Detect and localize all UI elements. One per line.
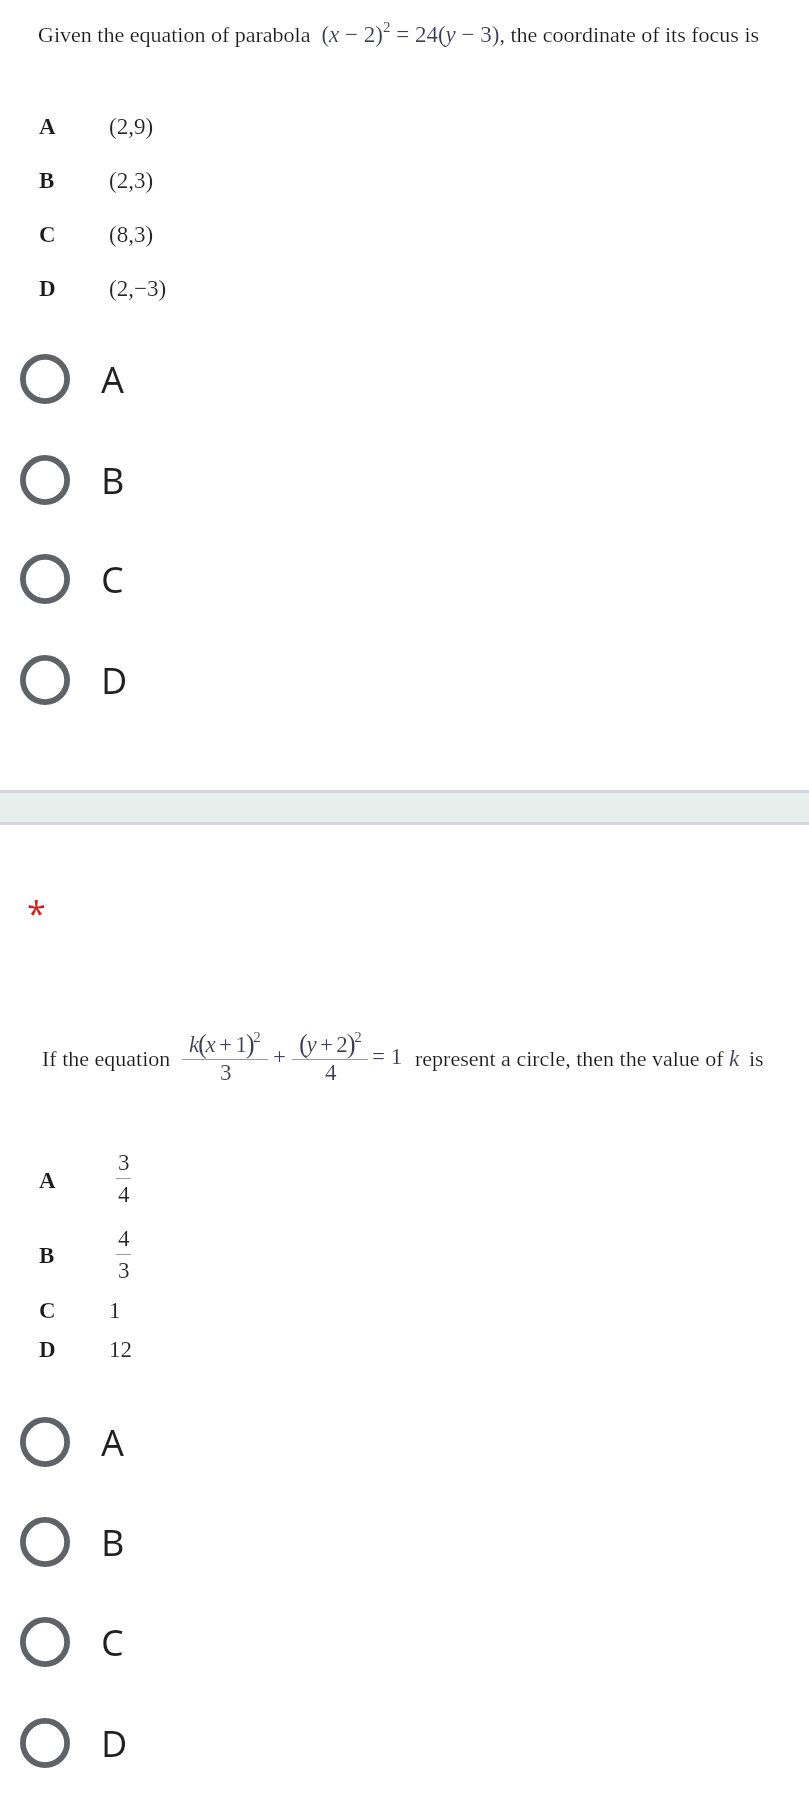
staticText: 12 (109, 1337, 132, 1362)
staticText: * (27, 890, 46, 936)
staticText: C (101, 1618, 124, 1667)
button[interactable]: D (0, 1337, 809, 1377)
staticText: B (101, 1518, 125, 1567)
staticText: B (39, 168, 55, 193)
staticText: C (39, 1298, 56, 1323)
button[interactable]: B (0, 168, 809, 216)
staticText: A (39, 114, 56, 139)
staticText: C (101, 555, 124, 604)
staticText: A (101, 1418, 125, 1467)
staticText: D (101, 1719, 128, 1768)
button[interactable]: C (0, 541, 809, 617)
staticText: B (101, 456, 125, 505)
button[interactable]: B (0, 442, 809, 518)
button[interactable]: D (0, 1705, 809, 1781)
staticText: 4 (325, 1060, 336, 1085)
staticText: (2,9) (109, 114, 154, 139)
staticText: A (101, 355, 125, 404)
button[interactable]: A (0, 1150, 809, 1220)
button[interactable]: D (0, 276, 809, 324)
staticText: k(x + 1)2 (189, 1029, 261, 1059)
staticText: B (39, 1243, 55, 1268)
button[interactable]: D (0, 642, 809, 718)
button[interactable]: A (0, 1404, 809, 1480)
staticText: If the equation (42, 1046, 171, 1070)
staticText: = 1 (372, 1044, 403, 1069)
staticText: A (39, 1168, 56, 1193)
staticText: Given the equation of parabola (x − 2)2 … (38, 19, 760, 47)
staticText: + (273, 1044, 286, 1069)
button[interactable]: C (0, 1298, 809, 1338)
button[interactable]: B (0, 1226, 809, 1296)
staticText: (y + 2)2 (299, 1029, 362, 1059)
staticText: 3 (118, 1150, 129, 1175)
button[interactable]: A (0, 114, 809, 162)
staticText: 4 (118, 1226, 129, 1251)
staticText: (2,−3) (109, 276, 167, 301)
staticText: represent a circle, then the value of k … (415, 1046, 764, 1071)
staticText: (2,3) (109, 168, 154, 193)
button[interactable]: C (0, 1604, 809, 1680)
staticText: 1 (109, 1298, 121, 1323)
staticText: D (101, 656, 128, 705)
staticText: 3 (118, 1258, 129, 1283)
staticText: 3 (220, 1060, 231, 1085)
staticText: D (39, 1337, 56, 1362)
button[interactable]: A (0, 341, 809, 417)
staticText: 4 (118, 1182, 129, 1207)
staticText: C (39, 222, 56, 247)
button[interactable]: B (0, 1504, 809, 1580)
staticText: (8,3) (109, 222, 154, 247)
button[interactable]: C (0, 222, 809, 270)
staticText: D (39, 276, 56, 301)
